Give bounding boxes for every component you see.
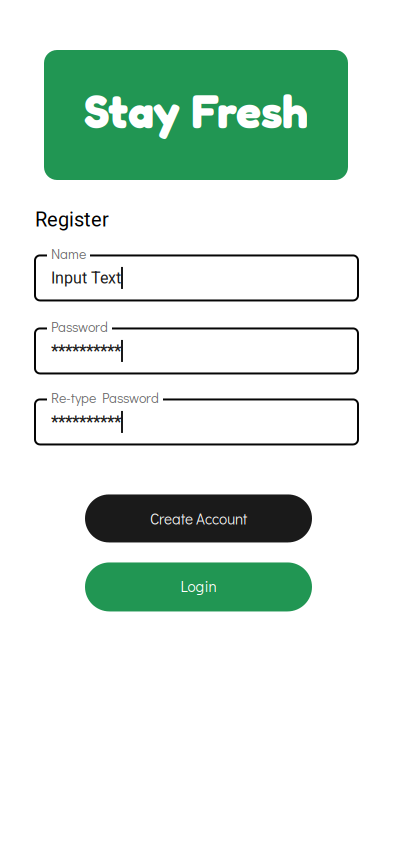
staticText: Password [51,317,108,336]
button[interactable]: ********** [35,399,358,444]
staticText: ********** [51,412,121,431]
staticText: ********** [51,341,121,360]
staticText: Create Account [150,508,247,528]
staticText: Register [35,208,109,231]
staticText: Name [51,244,86,263]
staticText: Stay Fresh [84,83,308,139]
button[interactable]: Input Text [35,255,358,300]
button[interactable]: ********** [35,328,358,373]
staticText: Login [180,576,216,596]
staticText: Input Text [51,269,121,287]
staticText: Re-type Password [51,388,159,407]
button[interactable]: Create Account [85,494,312,542]
button[interactable]: Login [85,562,312,611]
